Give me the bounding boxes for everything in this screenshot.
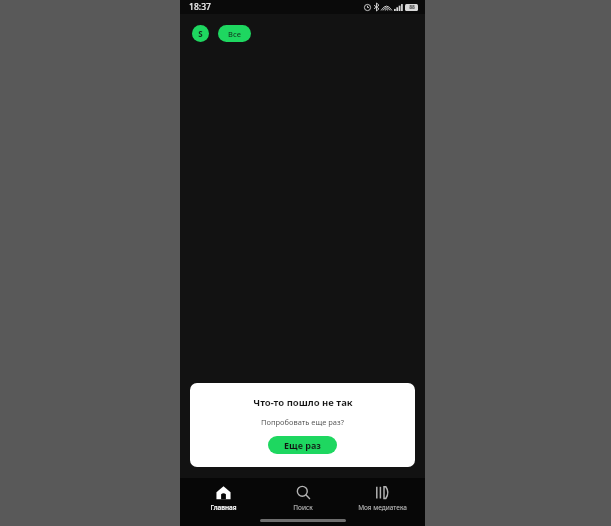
staticText: Все (228, 29, 241, 39)
button[interactable]: Profile (192, 25, 209, 42)
button[interactable]: Поиск (267, 485, 339, 512)
staticText: Еще раз (284, 439, 321, 451)
button[interactable]: Еще раз (268, 436, 337, 454)
staticText: Что-то пошло не так (253, 396, 353, 409)
staticText: 18:37 (189, 1, 211, 13)
button[interactable]: Все (218, 25, 251, 42)
staticText: 88 (409, 4, 415, 11)
staticText: Поиск (293, 503, 313, 512)
button[interactable]: Моя медиатека (346, 485, 418, 512)
staticText: S (198, 28, 203, 39)
button[interactable]: Главная (187, 485, 259, 512)
staticText: Попробовать еще раз? (261, 417, 344, 427)
staticText: Моя медиатека (358, 503, 407, 512)
staticText: Главная (210, 503, 237, 512)
